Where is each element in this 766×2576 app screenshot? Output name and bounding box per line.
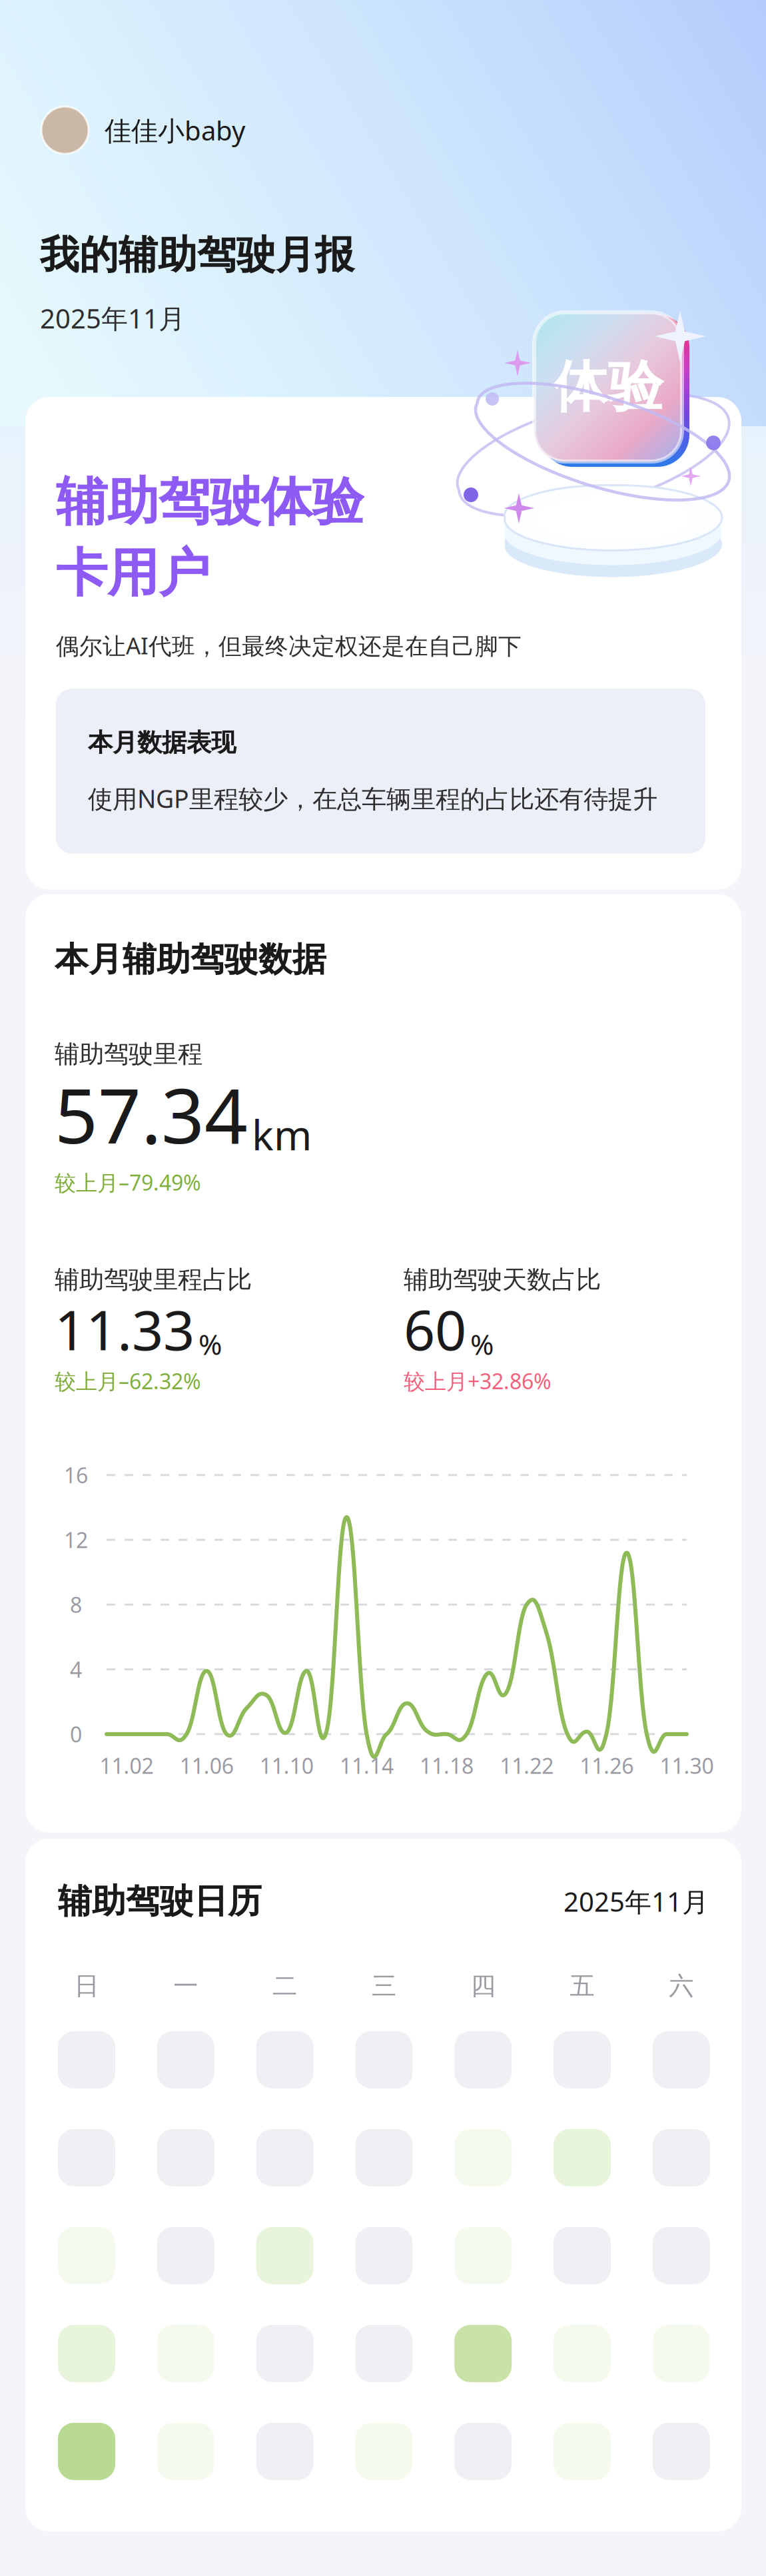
staticText: 偶尔让AI代班，但最终决定权还是在自己脚下 (56, 630, 522, 661)
staticText: 二 (272, 1971, 297, 2001)
staticText: 11.10 (260, 1751, 314, 1780)
staticText: 11.14 (340, 1751, 394, 1780)
staticText: 11.22 (500, 1751, 554, 1780)
staticText: 一 (173, 1971, 198, 2001)
staticText: 2025年11月 (40, 300, 185, 336)
staticText: 六 (669, 1971, 694, 2001)
staticText: 16 (64, 1461, 88, 1489)
staticText: 0 (70, 1720, 82, 1748)
staticText: 11.30 (660, 1751, 714, 1780)
staticText: 辅助驾驶里程 (55, 1039, 202, 1069)
staticText: 使用NGP里程较少，在总车辆里程的占比还有待提升 (88, 782, 657, 815)
staticText: 四 (471, 1971, 495, 2001)
staticText: 三 (372, 1971, 396, 2001)
staticText: 我的辅助驾驶月报 (40, 231, 354, 279)
staticText: 辅助驾驶日历 (58, 1881, 262, 1922)
staticText: 辅助驾驶天数占比 (404, 1264, 601, 1295)
staticText: 体验 (553, 353, 663, 421)
staticText: % (470, 1325, 494, 1363)
staticText: 8 (70, 1590, 82, 1619)
staticText: 11.33 (55, 1292, 194, 1366)
staticText: 60 (404, 1292, 466, 1366)
staticText: 较上月–62.32% (55, 1367, 201, 1395)
staticText: 12 (64, 1526, 88, 1554)
staticText: 4 (70, 1655, 82, 1683)
staticText: 11.06 (180, 1751, 234, 1780)
staticText: % (198, 1325, 222, 1363)
staticText: 五 (570, 1971, 594, 2001)
staticText: 卡用户 (56, 542, 210, 605)
staticText: 较上月–79.49% (55, 1168, 201, 1197)
staticText: 本月辅助驾驶数据 (55, 939, 326, 980)
staticText: 辅助驾驶里程占比 (55, 1264, 252, 1295)
staticText: 辅助驾驶体验 (56, 470, 364, 534)
staticText: 本月数据表现 (88, 727, 236, 758)
staticText: 较上月+32.86% (404, 1367, 552, 1395)
staticText: 2025年11月 (564, 1884, 709, 1919)
staticText: 11.02 (100, 1751, 154, 1780)
staticText: 11.18 (420, 1751, 474, 1780)
staticText: 佳佳小baby (105, 112, 245, 148)
staticText: 日 (74, 1971, 99, 2001)
staticText: 11.26 (580, 1751, 634, 1780)
button[interactable]: 佳佳小baby (0, 107, 766, 154)
staticText: km (252, 1107, 312, 1162)
staticText: 57.34 (55, 1064, 248, 1164)
